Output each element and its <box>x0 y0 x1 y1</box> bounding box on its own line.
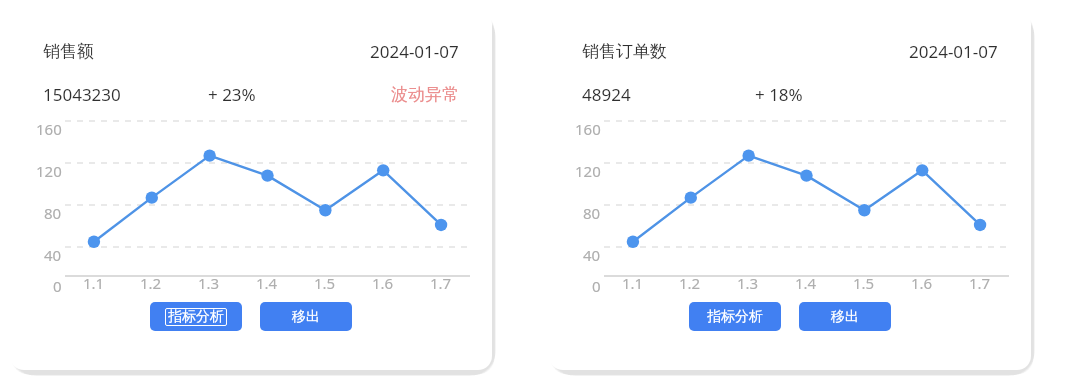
staticText: 1.3 <box>737 273 759 293</box>
staticText: 0 <box>592 276 601 296</box>
staticText: 指标分析 <box>168 308 224 326</box>
staticText: 1.2 <box>679 273 701 293</box>
staticText: 120 <box>36 161 62 181</box>
staticText: 1.7 <box>430 273 452 293</box>
staticText: 1.1 <box>83 273 105 293</box>
staticText: 销售订单数 <box>582 41 667 62</box>
staticText: 销售额 <box>43 41 94 62</box>
staticText: 1.4 <box>256 273 278 293</box>
staticText: 2024-01-07 <box>909 40 998 63</box>
staticText: 1.6 <box>372 273 394 293</box>
staticText: 波动异常 <box>391 84 459 105</box>
staticText: 1.6 <box>911 273 933 293</box>
staticText: 移出 <box>292 308 320 326</box>
staticText: 120 <box>575 161 601 181</box>
staticText: 1.1 <box>622 273 644 293</box>
staticText: + 18% <box>755 83 803 106</box>
staticText: 160 <box>36 119 62 139</box>
staticText: 0 <box>53 276 62 296</box>
staticText: 48924 <box>582 83 631 106</box>
button[interactable]: 指标分析 <box>689 302 781 331</box>
staticText: 1.5 <box>853 273 875 293</box>
staticText: 80 <box>44 203 62 223</box>
staticText: 160 <box>575 119 601 139</box>
staticText: 15043230 <box>43 83 121 106</box>
staticText: 移出 <box>831 308 859 326</box>
staticText: 1.5 <box>314 273 336 293</box>
staticText: 指标分析 <box>707 308 763 326</box>
staticText: 1.3 <box>198 273 220 293</box>
staticText: 40 <box>44 245 62 265</box>
staticText: 1.7 <box>969 273 991 293</box>
button[interactable]: 移出 <box>260 302 352 331</box>
staticText: 2024-01-07 <box>370 40 459 63</box>
staticText: 80 <box>583 203 601 223</box>
staticText: 1.4 <box>795 273 817 293</box>
button[interactable]: 移出 <box>799 302 891 331</box>
staticText: + 23% <box>208 83 256 106</box>
staticText: 40 <box>583 245 601 265</box>
button[interactable]: 指标分析 <box>150 302 242 331</box>
staticText: 1.2 <box>140 273 162 293</box>
